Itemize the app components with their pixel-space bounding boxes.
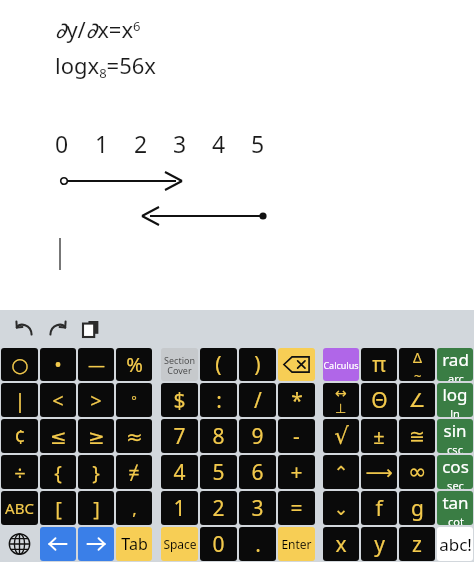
button[interactable]: Change language [1, 527, 38, 561]
button[interactable]: 4 [161, 455, 198, 489]
button[interactable]: ≥ [78, 419, 114, 453]
staticText: 0 [212, 530, 225, 559]
button[interactable]: % [116, 348, 152, 381]
staticText: < [52, 387, 64, 414]
button[interactable]: 2 [200, 491, 237, 525]
button[interactable]: rad arc [437, 348, 473, 381]
button[interactable]: . [239, 527, 276, 561]
staticText: 1 [95, 128, 109, 159]
button[interactable]: ↔ ⊥ [323, 383, 359, 417]
button[interactable]: ÷ [1, 455, 38, 489]
button[interactable]: • [40, 348, 76, 381]
button[interactable]: 6 [239, 455, 276, 489]
button[interactable]: ≠ [116, 455, 152, 489]
staticText: rad [442, 348, 469, 371]
staticText: ¢ [14, 423, 26, 450]
button[interactable]: Space [161, 527, 198, 561]
button[interactable]: Backspace [278, 348, 315, 381]
button[interactable]: ≤ [40, 419, 76, 453]
button[interactable]: ∞ [399, 455, 435, 489]
button[interactable]: 0 [200, 527, 237, 561]
button[interactable]: Section Cover [161, 348, 198, 381]
button[interactable]: cos sec [437, 455, 473, 489]
staticText: 3 [251, 494, 264, 523]
button[interactable]: log ln [437, 383, 473, 417]
staticText: ≥ [88, 425, 105, 448]
button[interactable]: abc! [437, 527, 473, 561]
button[interactable]: / [239, 383, 276, 417]
button[interactable]: , [116, 491, 152, 525]
staticText: - [293, 422, 300, 451]
staticText: Enter [281, 536, 312, 552]
button[interactable]: * [278, 383, 315, 417]
button[interactable]: g [399, 491, 435, 525]
staticText: logx8=56x [55, 50, 156, 82]
button[interactable]: Move left [40, 527, 76, 561]
staticText: Δ [413, 348, 422, 367]
button[interactable]: ≈ [116, 419, 152, 453]
staticText: g [411, 494, 424, 523]
button[interactable]: 7 [161, 419, 198, 453]
button[interactable]: = [278, 491, 315, 525]
button[interactable]: < [40, 383, 76, 417]
button[interactable]: ≅ [399, 419, 435, 453]
button[interactable]: Δ ~ [399, 348, 435, 381]
staticText: z [412, 530, 422, 559]
button[interactable]: z [399, 527, 435, 561]
button[interactable]: + [278, 455, 315, 489]
staticText: ± [373, 423, 385, 450]
staticText: ∠ [408, 389, 426, 411]
button[interactable]: Move right [78, 527, 114, 561]
button[interactable]: — [78, 348, 114, 381]
button[interactable]: 5 [200, 455, 237, 489]
button[interactable]: : [200, 383, 237, 417]
button[interactable]: Undo [9, 314, 39, 344]
button[interactable]: ° [116, 383, 152, 417]
button[interactable]: ⌄ [323, 491, 359, 525]
button[interactable]: ) [239, 348, 276, 381]
button[interactable]: } [78, 455, 114, 489]
button[interactable]: f [361, 491, 397, 525]
button[interactable]: Calculus [323, 348, 359, 381]
button[interactable]: √ [323, 419, 359, 453]
button[interactable]: Θ [361, 383, 397, 417]
button[interactable]: sin csc [437, 419, 473, 453]
button[interactable]: ( [200, 348, 237, 381]
staticText: ↔ [335, 385, 347, 401]
button[interactable]: ⟶ [361, 455, 397, 489]
button[interactable]: y [361, 527, 397, 561]
staticText: x [335, 530, 347, 559]
button[interactable]: ∠ [399, 383, 435, 417]
button[interactable]: tan cot [437, 491, 473, 525]
button[interactable]: x [323, 527, 359, 561]
button[interactable]: π [361, 348, 397, 381]
button[interactable]: $ [161, 383, 198, 417]
button[interactable]: Enter [278, 527, 315, 561]
staticText: 0 [55, 128, 69, 159]
button[interactable]: ¢ [1, 419, 38, 453]
staticText: ⟶ [365, 461, 393, 483]
staticText: [ [55, 495, 62, 522]
staticText: % [126, 351, 143, 378]
staticText: * [291, 386, 303, 415]
button[interactable]: > [78, 383, 114, 417]
staticText: ∂y/∂x=x6 [55, 14, 141, 44]
button[interactable]: | [1, 383, 38, 417]
button[interactable]: ⌃ [323, 455, 359, 489]
button[interactable]: 1 [161, 491, 198, 525]
staticText: f [375, 494, 383, 523]
button[interactable]: ○ [1, 348, 38, 381]
button[interactable]: - [278, 419, 315, 453]
button[interactable]: { [40, 455, 76, 489]
button[interactable]: 8 [200, 419, 237, 453]
button[interactable]: ABC [1, 491, 38, 525]
button[interactable]: Paste [77, 315, 105, 343]
button[interactable]: [ [40, 491, 76, 525]
button[interactable]: ± [361, 419, 397, 453]
staticText: cos [442, 455, 469, 478]
button[interactable]: 9 [239, 419, 276, 453]
button[interactable]: Redo [43, 314, 73, 344]
button[interactable]: Tab [116, 527, 152, 561]
button[interactable]: 3 [239, 491, 276, 525]
button[interactable]: ] [78, 491, 114, 525]
